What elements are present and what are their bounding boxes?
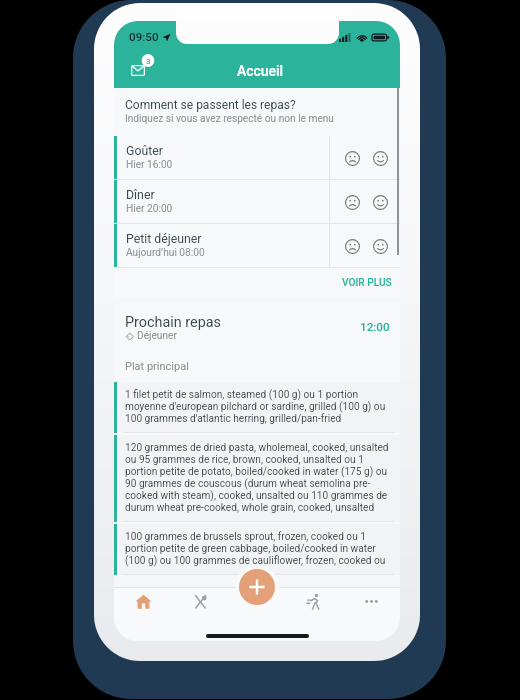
staticText: 12:00 bbox=[360, 320, 390, 334]
button[interactable]: Activité bbox=[286, 587, 343, 615]
staticText: Dîner bbox=[126, 188, 155, 202]
button[interactable]: VOIR PLUS bbox=[320, 269, 400, 297]
button[interactable]: Goûter bbox=[114, 136, 400, 180]
staticText: Hier 16:00 bbox=[126, 159, 173, 171]
button[interactable]: Pas respecté bbox=[338, 188, 366, 216]
staticText: Aujourd’hui 08:00 bbox=[126, 247, 205, 259]
button[interactable]: Dîner bbox=[114, 180, 400, 224]
staticText: 3 bbox=[146, 57, 151, 66]
button[interactable]: Accueil bbox=[114, 587, 172, 615]
staticText: 1 filet petit de salmon, steamed (100 g)… bbox=[125, 389, 386, 425]
staticText: Petit déjeuner bbox=[126, 232, 202, 246]
button[interactable]: 120 grammes de dried pasta, wholemeal, c… bbox=[117, 435, 400, 522]
button[interactable]: Repas bbox=[172, 587, 229, 615]
staticText: Plat principal bbox=[125, 360, 189, 373]
button[interactable]: Respecté bbox=[366, 232, 394, 260]
button[interactable]: Pas respecté bbox=[338, 144, 366, 172]
button[interactable]: 100 grammes de brussels sprout, frozen, … bbox=[117, 524, 400, 575]
button[interactable]: Petit déjeuner bbox=[114, 224, 400, 268]
button[interactable]: Respecté bbox=[366, 144, 394, 172]
staticText: Hier 20:00 bbox=[126, 203, 173, 215]
button[interactable]: Pas respecté bbox=[338, 232, 366, 260]
staticText: VOIR PLUS bbox=[342, 277, 392, 289]
staticText: 100 grammes de brussels sprout, frozen, … bbox=[125, 531, 386, 567]
staticText: Prochain repas bbox=[125, 314, 222, 331]
staticText: Déjeuner bbox=[137, 330, 177, 342]
staticText: 09:50 bbox=[129, 30, 159, 44]
staticText: Comment se passent les repas? bbox=[125, 98, 296, 112]
button[interactable]: Respecté bbox=[366, 188, 394, 216]
button[interactable]: Plus bbox=[343, 587, 400, 615]
button[interactable]: Messages bbox=[127, 50, 159, 82]
staticText: Goûter bbox=[126, 144, 163, 158]
staticText: Accueil bbox=[237, 63, 283, 79]
staticText: Indiquez si vous avez respecté ou non le… bbox=[125, 113, 334, 125]
button[interactable]: 1 filet petit de salmon, steamed (100 g)… bbox=[117, 382, 400, 433]
button[interactable]: Ajouter bbox=[239, 569, 275, 605]
staticText: 120 grammes de dried pasta, wholemeal, c… bbox=[125, 442, 389, 514]
